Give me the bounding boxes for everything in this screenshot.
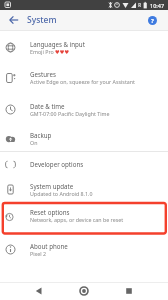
button[interactable]: Languages & input bbox=[0, 37, 168, 57]
staticText: 10:47 bbox=[150, 2, 165, 9]
staticText: Gestures bbox=[30, 70, 56, 78]
button[interactable]: ? bbox=[148, 16, 157, 25]
button[interactable]: Reset options bbox=[0, 205, 168, 225]
staticText: GMT-07:00 Pacific Daylight Time bbox=[30, 110, 110, 117]
staticText: Backup bbox=[30, 131, 52, 139]
staticText: Reset options bbox=[30, 208, 70, 216]
button[interactable] bbox=[122, 284, 136, 298]
staticText: On bbox=[30, 139, 38, 146]
button[interactable]: Developer options bbox=[0, 154, 168, 174]
staticText: Pixel 2 bbox=[30, 250, 47, 257]
staticText: Emoji Pro ♥♥♥ bbox=[30, 48, 70, 55]
staticText: Languages & input bbox=[30, 40, 85, 48]
staticText: Developer options bbox=[30, 160, 84, 168]
button[interactable]: Backup bbox=[0, 128, 168, 148]
button[interactable]: Gestures bbox=[0, 67, 168, 87]
button[interactable]: System update bbox=[0, 179, 168, 199]
staticText: R bbox=[137, 2, 143, 8]
button[interactable] bbox=[77, 284, 91, 298]
staticText: Network, apps, or device can be reset bbox=[30, 216, 124, 223]
button[interactable]: Date & time bbox=[0, 99, 168, 119]
staticText: System bbox=[27, 14, 57, 26]
button[interactable]: About phone bbox=[0, 239, 168, 259]
staticText: ? bbox=[151, 17, 154, 25]
staticText: Active Edge on, squeeze for your Assista… bbox=[30, 78, 135, 85]
button[interactable] bbox=[32, 284, 46, 298]
staticText: Updated to Android 8.1.0 bbox=[30, 190, 93, 197]
button[interactable] bbox=[9, 15, 19, 25]
staticText: System update bbox=[30, 182, 74, 190]
staticText: About phone bbox=[30, 242, 68, 250]
staticText: Date & time bbox=[30, 102, 65, 110]
